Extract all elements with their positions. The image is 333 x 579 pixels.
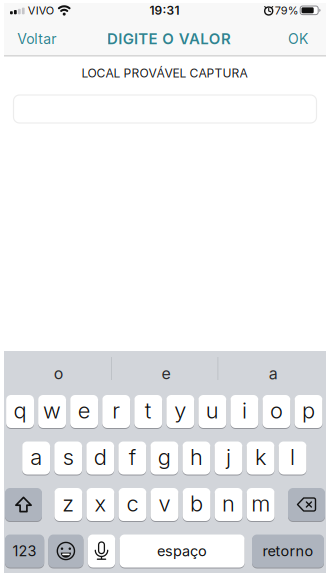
button[interactable]: w: [38, 395, 66, 428]
button[interactable]: 123: [5, 534, 44, 567]
staticText: 79%: [275, 4, 299, 17]
button[interactable]: g: [150, 441, 178, 474]
staticText: f: [129, 444, 136, 470]
button[interactable]: o: [262, 395, 290, 428]
button[interactable]: e: [70, 395, 98, 428]
staticText: z: [62, 490, 74, 517]
staticText: e: [78, 397, 91, 424]
button[interactable]: e: [116, 356, 216, 390]
button[interactable]: j: [214, 441, 242, 474]
button[interactable]: q: [6, 395, 34, 428]
staticText: o: [270, 397, 283, 424]
button[interactable]: Shift: [5, 488, 42, 521]
button[interactable]: Emoji: [48, 534, 83, 567]
button[interactable]: m: [247, 488, 275, 521]
button[interactable]: h: [182, 441, 210, 474]
button[interactable]: a: [223, 356, 323, 390]
button[interactable]: f: [118, 441, 146, 474]
staticText: u: [206, 397, 219, 424]
button[interactable]: v: [151, 488, 178, 521]
staticText: s: [63, 444, 74, 470]
button[interactable]: i: [230, 395, 258, 428]
button[interactable]: c: [118, 488, 146, 521]
staticText: w: [43, 397, 61, 424]
staticText: d: [94, 444, 107, 470]
staticText: q: [14, 397, 27, 424]
staticText: espaço: [157, 542, 207, 560]
staticText: e: [161, 364, 170, 383]
staticText: y: [174, 397, 186, 424]
staticText: m: [251, 490, 270, 517]
staticText: j: [226, 444, 231, 470]
staticText: l: [290, 444, 295, 470]
button[interactable]: x: [86, 488, 114, 521]
staticText: k: [255, 444, 266, 470]
staticText: LOCAL PROVÁVEL CAPTURA: [81, 66, 247, 80]
button[interactable]: y: [166, 395, 194, 428]
button[interactable]: z: [54, 488, 82, 521]
staticText: 123: [13, 542, 37, 560]
button[interactable]: Apagar: [288, 488, 325, 521]
staticText: g: [158, 444, 171, 470]
staticText: VIVO: [28, 4, 54, 17]
staticText: DIGITE O VALOR: [107, 30, 231, 48]
staticText: p: [302, 397, 315, 424]
staticText: a: [30, 444, 42, 470]
button[interactable]: d: [86, 441, 114, 474]
button[interactable]: Voltar: [7, 24, 67, 54]
staticText: o: [54, 364, 64, 383]
staticText: a: [269, 364, 278, 383]
staticText: b: [190, 490, 203, 517]
staticText: c: [126, 490, 138, 517]
staticText: n: [222, 490, 235, 517]
staticText: Voltar: [17, 30, 56, 47]
button[interactable]: s: [54, 441, 82, 474]
button[interactable]: l: [279, 441, 306, 474]
button[interactable]: n: [215, 488, 243, 521]
staticText: v: [158, 490, 170, 517]
button[interactable]: u: [198, 395, 226, 428]
button[interactable]: OK: [276, 24, 320, 54]
button[interactable]: retorno: [252, 534, 324, 567]
button[interactable]: k: [246, 441, 274, 474]
button[interactable]: espaço: [120, 534, 245, 567]
button[interactable]: r: [102, 395, 130, 428]
staticText: i: [242, 397, 247, 424]
staticText: 19:31: [150, 3, 180, 17]
staticText: t: [145, 397, 152, 424]
staticText: retorno: [262, 542, 313, 560]
button[interactable]: p: [295, 395, 322, 428]
staticText: h: [190, 444, 203, 470]
staticText: OK: [288, 30, 308, 47]
button[interactable]: a: [22, 441, 50, 474]
staticText: x: [94, 490, 106, 517]
button[interactable]: t: [134, 395, 162, 428]
button[interactable]: b: [183, 488, 210, 521]
staticText: r: [112, 397, 120, 424]
button[interactable]: o: [9, 356, 109, 390]
button[interactable]: Ditado: [88, 534, 115, 567]
